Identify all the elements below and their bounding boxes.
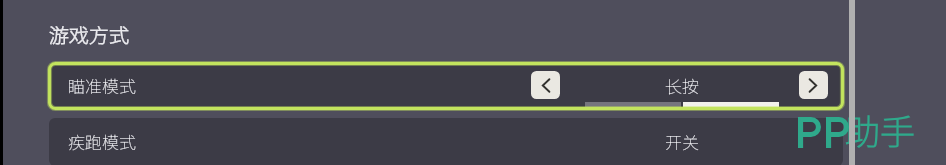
staticText: 疾跑模式 <box>68 129 136 154</box>
button[interactable]: 疾跑模式 <box>49 118 843 165</box>
staticText: 长按 <box>665 73 699 98</box>
button[interactable]: 瞄准模式 <box>49 62 843 110</box>
staticText: 瞄准模式 <box>68 73 136 98</box>
button[interactable]: 上一项 <box>531 71 560 99</box>
staticText: 开关 <box>665 129 699 154</box>
staticText: 游戏方式 <box>49 20 129 49</box>
button[interactable]: 下一项 <box>799 71 828 99</box>
staticText: 助手 <box>845 104 916 155</box>
